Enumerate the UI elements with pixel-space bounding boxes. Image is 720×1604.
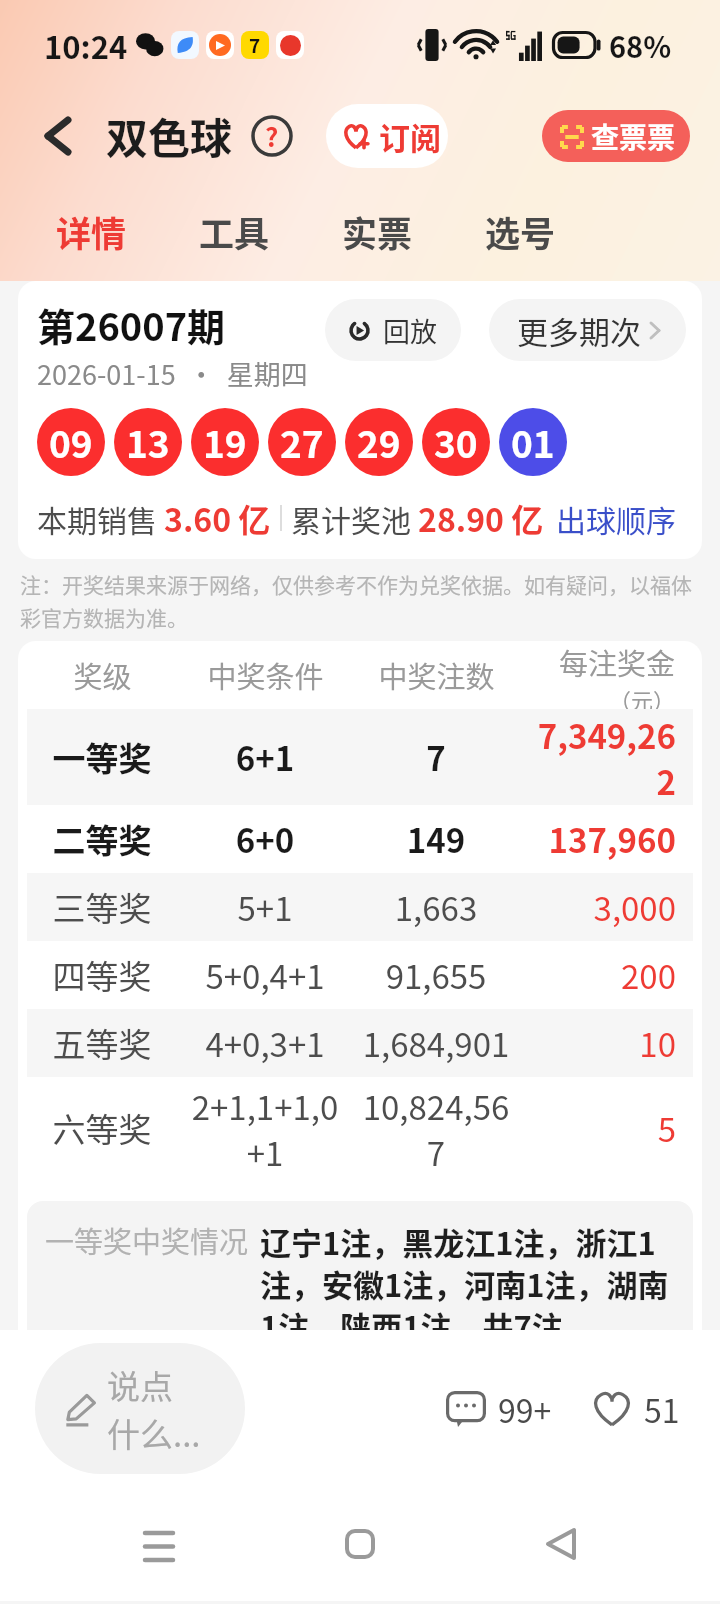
staticText: 四等奖	[27, 951, 177, 999]
staticText: 一等奖中奖情况	[45, 1219, 249, 1261]
staticText: 奖级	[73, 654, 132, 696]
button[interactable]: 帮助	[251, 115, 293, 157]
staticText: 五等奖	[27, 1019, 177, 1067]
staticText: 本期销售	[37, 497, 164, 540]
button[interactable]: 选号	[479, 198, 562, 265]
staticText: 说点 什么...	[107, 1361, 201, 1457]
button[interactable]: 99+	[446, 1386, 552, 1432]
staticText: 5	[519, 1104, 676, 1152]
button[interactable]: 实票	[336, 198, 419, 265]
staticText: 详情	[56, 206, 127, 257]
staticText: （元）	[609, 683, 676, 709]
staticText: 实票	[342, 206, 413, 257]
button[interactable]: 最近任务	[117, 1502, 201, 1586]
staticText: 2+1,1+1,0 +1	[177, 1082, 353, 1175]
staticText: 一等奖	[27, 733, 177, 781]
staticText: 30	[434, 415, 478, 469]
staticText: 6+1	[177, 733, 353, 781]
staticText: 28.90 亿	[418, 495, 544, 541]
staticText: 137,960	[519, 815, 676, 863]
staticText: 辽宁1注，黑龙江1注，浙江1注，安徽1注，河南1注，湖南1注，陕西1注，共7注	[260, 1219, 685, 1330]
staticText: 09	[49, 415, 93, 469]
button[interactable]: 更多期次	[489, 299, 686, 361]
staticText: 累计奖池	[291, 497, 418, 540]
staticText: 回放	[383, 311, 437, 350]
staticText: 六等奖	[27, 1104, 177, 1152]
staticText: 149	[353, 815, 519, 863]
staticText: 51	[644, 1386, 680, 1432]
button[interactable]: 51	[592, 1386, 680, 1432]
staticText: 每注奖金	[559, 641, 676, 683]
staticText: 6+0	[177, 815, 353, 863]
staticText: 10,824,56 7	[353, 1082, 519, 1175]
staticText: 29	[357, 415, 401, 469]
button[interactable]: 返回	[519, 1502, 603, 1586]
staticText: 三等奖	[27, 883, 177, 931]
staticText: 4+0,3+1	[177, 1019, 353, 1067]
staticText: 7	[353, 733, 519, 781]
button[interactable]: 订阅	[326, 104, 448, 168]
staticText: 68%	[609, 24, 672, 66]
staticText: 13	[126, 415, 170, 469]
staticText: 1,663	[353, 883, 519, 931]
staticText: 7,349,26 2	[519, 711, 676, 804]
button[interactable]: 返回	[28, 106, 88, 166]
button[interactable]: 查票票	[542, 110, 690, 162]
staticText: 工具	[199, 206, 270, 257]
staticText: 3,000	[519, 883, 676, 931]
staticText: 订阅	[379, 114, 441, 159]
button[interactable]: 回放	[325, 299, 461, 361]
button[interactable]: 说点 什么...	[35, 1343, 245, 1474]
staticText: 查票票	[591, 116, 676, 157]
staticText: ?	[265, 117, 279, 155]
button[interactable]: 出球顺序	[556, 497, 676, 540]
staticText: 1,684,901	[353, 1019, 519, 1067]
staticText: 99+	[498, 1386, 552, 1432]
staticText: 01	[511, 415, 555, 469]
staticText: 19	[203, 415, 247, 469]
staticText: 出球顺序	[556, 497, 676, 540]
staticText: 10:24	[44, 23, 128, 68]
button[interactable]: 主页	[318, 1502, 402, 1586]
staticText: 91,655	[353, 951, 519, 999]
staticText: 2026-01-15 · 星期四	[37, 354, 308, 393]
staticText: 注：开奖结果来源于网络，仅供参考不作为兑奖依据。如有疑问，以福体 彩官方数据为准…	[20, 569, 692, 632]
staticText: 中奖注数	[378, 654, 495, 696]
staticText: 二等奖	[27, 815, 177, 863]
staticText: 3.60 亿	[164, 495, 271, 541]
button[interactable]: 工具	[193, 198, 276, 265]
staticText: 27	[280, 415, 324, 469]
staticText: 10	[519, 1019, 676, 1067]
staticText: 选号	[485, 206, 556, 257]
staticText: 7	[249, 31, 261, 59]
staticText: 5+0,4+1	[177, 951, 353, 999]
staticText: 中奖条件	[207, 654, 324, 696]
staticText: 双色球	[106, 105, 233, 166]
button[interactable]: 详情	[50, 198, 133, 265]
staticText: 5+1	[177, 883, 353, 931]
staticText: 第26007期	[37, 297, 226, 352]
staticText: 200	[519, 951, 676, 999]
staticText: 更多期次	[517, 308, 641, 353]
